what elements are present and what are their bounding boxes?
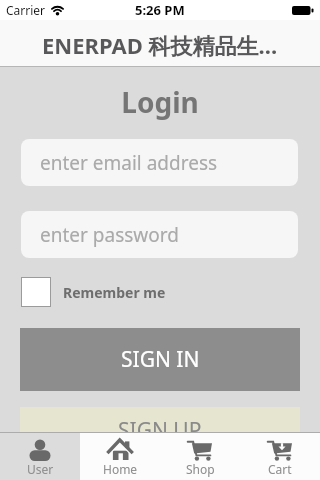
staticText: Cart — [268, 461, 292, 477]
staticText: Remember me — [63, 283, 166, 302]
button[interactable]: enter email address — [21, 139, 298, 186]
staticText: SIGN IN — [121, 345, 200, 374]
button[interactable]: enter password — [21, 211, 298, 258]
button[interactable]: User — [0, 433, 80, 480]
button[interactable]: Home — [80, 433, 160, 480]
staticText: Login — [0, 83, 320, 121]
staticText: 5:26 PM — [135, 1, 185, 19]
staticText: Home — [103, 461, 138, 477]
staticText: enter email address — [40, 150, 218, 176]
button[interactable]: Shop — [160, 433, 240, 480]
button[interactable]: Remember me — [21, 277, 166, 307]
staticText: Carrier — [6, 2, 46, 18]
staticText: SIGN UP — [118, 416, 202, 445]
staticText: ENERPAD 科技精品生... — [42, 30, 278, 60]
staticText: User — [27, 461, 54, 477]
button[interactable]: Cart — [240, 433, 320, 480]
staticText: enter password — [40, 222, 179, 248]
button[interactable]: SIGN IN — [20, 328, 300, 391]
button[interactable]: SIGN UP — [20, 407, 300, 454]
staticText: Shop — [186, 461, 215, 477]
